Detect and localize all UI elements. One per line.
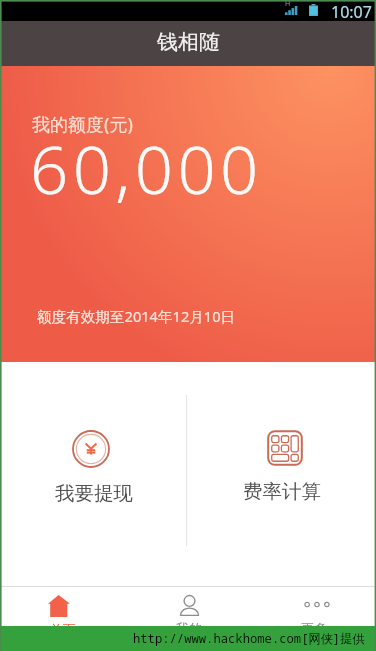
staticText: 额度有效期至2014年12月10日 — [37, 306, 236, 326]
button[interactable]: Profile — [126, 586, 251, 636]
other: Profile — [180, 596, 199, 617]
other: Home — [48, 595, 70, 617]
button[interactable]: 我要提现 — [0, 362, 188, 536]
staticText: 钱相随 — [157, 29, 220, 55]
staticText: 费率计算 — [243, 479, 321, 504]
staticText: 60,000 — [30, 122, 263, 213]
staticText: 首页 — [50, 621, 76, 637]
staticText: 我要提现 — [55, 481, 133, 506]
staticText: 更多 — [301, 620, 327, 636]
staticText: 10:07 — [331, 1, 372, 22]
staticText: H — [285, 0, 291, 9]
button[interactable]: Home — [0, 586, 126, 637]
button[interactable]: 费率计算 — [188, 362, 376, 534]
other: More — [305, 594, 329, 615]
staticText: 我的额度(元) — [32, 112, 133, 137]
staticText: 我的 — [176, 620, 202, 636]
button[interactable]: More — [251, 586, 376, 636]
staticText: http://www.hackhome.com[网侠]提供 — [133, 630, 365, 647]
